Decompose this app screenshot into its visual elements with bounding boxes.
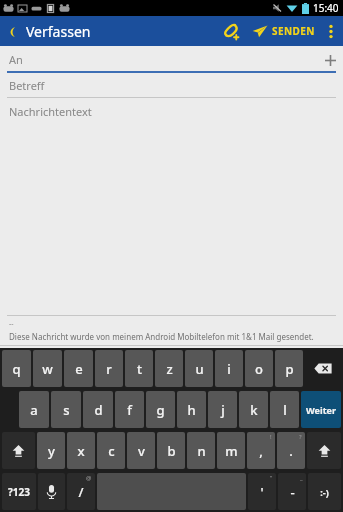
- button[interactable]: Verfassen: [0, 22, 99, 41]
- staticText: u: [195, 360, 204, 378]
- button[interactable]: f: [115, 391, 144, 428]
- staticText: ?123: [8, 485, 30, 499]
- staticText: @: [86, 474, 92, 482]
- staticText: d: [94, 401, 103, 419]
- staticText: :-): [320, 486, 329, 498]
- button[interactable]: l: [270, 391, 299, 428]
- button[interactable]: q: [2, 350, 31, 387]
- staticText: r: [106, 360, 112, 378]
- staticText: ,: [259, 442, 263, 460]
- staticText: !: [270, 433, 272, 441]
- staticText: i: [227, 360, 231, 378]
- button[interactable]: e: [64, 350, 93, 387]
- button[interactable]: :-): [308, 473, 341, 510]
- staticText: .: [289, 442, 293, 460]
- button[interactable]: n: [187, 432, 215, 469]
- button[interactable]: Kontakt hinzufügen: [317, 47, 343, 73]
- staticText: _: [300, 474, 303, 482]
- button[interactable]: g: [146, 391, 175, 428]
- staticText: Verfassen: [26, 22, 91, 41]
- button[interactable]: -: [278, 473, 306, 510]
- button[interactable]: m: [217, 432, 245, 469]
- staticText: m: [225, 442, 238, 460]
- button[interactable]: Weitere Optionen: [319, 16, 343, 46]
- button[interactable]: s: [51, 391, 81, 428]
- staticText: 15:40: [313, 1, 339, 15]
- button[interactable]: i: [215, 350, 243, 387]
- button[interactable]: w: [33, 350, 62, 387]
- staticText: An: [9, 52, 23, 67]
- staticText: ': [260, 483, 264, 501]
- staticText: y: [48, 442, 55, 460]
- button[interactable]: x: [67, 432, 95, 469]
- staticText: Diese Nachricht wurde von meinem Android…: [9, 331, 314, 342]
- button[interactable]: d: [83, 391, 113, 428]
- button[interactable]: b: [157, 432, 185, 469]
- button[interactable]: Betreff: [0, 73, 343, 98]
- button[interactable]: Nachrichtentext: [0, 98, 343, 316]
- button[interactable]: Umschalt: [307, 432, 341, 469]
- button[interactable]: Spracheingabe: [38, 473, 65, 510]
- button[interactable]: Weiter: [301, 391, 341, 428]
- button[interactable]: ': [248, 473, 276, 510]
- staticText: t: [137, 360, 142, 378]
- button[interactable]: SENDEN: [248, 24, 319, 38]
- staticText: g: [156, 401, 165, 419]
- button[interactable]: a: [19, 391, 49, 428]
- staticText: n: [197, 442, 206, 460]
- button[interactable]: Anhang hinzufügen: [214, 16, 248, 46]
- button[interactable]: k: [239, 391, 268, 428]
- staticText: w: [42, 360, 53, 378]
- button[interactable]: ?123: [2, 473, 36, 510]
- button[interactable]: Löschen: [305, 350, 341, 387]
- staticText: c: [108, 442, 115, 460]
- staticText: l: [283, 401, 287, 419]
- button[interactable]: An: [0, 46, 343, 73]
- button[interactable]: h: [177, 391, 206, 428]
- button[interactable]: ,: [247, 432, 275, 469]
- staticText: z: [166, 360, 173, 378]
- button[interactable]: v: [127, 432, 155, 469]
- staticText: x: [77, 442, 85, 460]
- staticText: e: [75, 360, 83, 378]
- staticText: Weiter: [306, 404, 336, 416]
- staticText: s: [63, 401, 70, 419]
- staticText: h: [187, 401, 196, 419]
- button[interactable]: c: [97, 432, 125, 469]
- button[interactable]: r: [95, 350, 123, 387]
- button[interactable]: /: [67, 473, 95, 510]
- staticText: ?: [299, 433, 302, 441]
- button[interactable]: u: [185, 350, 213, 387]
- staticText: j: [221, 401, 225, 419]
- staticText: -: [290, 483, 295, 501]
- staticText: v: [138, 442, 145, 460]
- staticText: --: [9, 319, 14, 329]
- button[interactable]: t: [125, 350, 153, 387]
- button[interactable]: y: [37, 432, 65, 469]
- staticText: k: [250, 401, 258, 419]
- staticText: p: [285, 360, 294, 378]
- button[interactable]: Umschalt: [2, 432, 35, 469]
- staticText: Betreff: [9, 78, 45, 93]
- button[interactable]: p: [275, 350, 303, 387]
- button[interactable]: .: [277, 432, 305, 469]
- staticText: b: [167, 442, 176, 460]
- staticText: o: [255, 360, 263, 378]
- staticText: ": [270, 474, 273, 482]
- staticText: a: [30, 401, 38, 419]
- staticText: /: [78, 483, 84, 501]
- button[interactable]: o: [245, 350, 273, 387]
- staticText: q: [12, 360, 21, 378]
- button[interactable]: j: [208, 391, 237, 428]
- staticText: Nachrichtentext: [9, 104, 92, 119]
- staticText: SENDEN: [272, 24, 315, 38]
- button[interactable]: z: [155, 350, 183, 387]
- staticText: f: [127, 401, 132, 419]
